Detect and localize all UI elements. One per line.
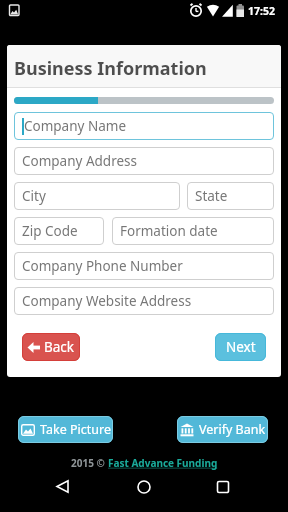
button[interactable]: Back bbox=[22, 333, 80, 361]
staticText: Company Address bbox=[22, 152, 138, 170]
button[interactable]: State bbox=[187, 182, 274, 210]
staticText: Company Website Address bbox=[22, 292, 192, 310]
button[interactable] bbox=[210, 474, 236, 500]
staticText: Verify Bank bbox=[199, 421, 266, 438]
button[interactable]: Zip Code bbox=[14, 217, 104, 245]
button[interactable]: Company Website Address bbox=[14, 287, 274, 315]
staticText: Company Phone Number bbox=[22, 257, 183, 275]
staticText: Next bbox=[226, 338, 256, 356]
button[interactable]: Company Phone Number bbox=[14, 252, 274, 280]
button[interactable]: Next bbox=[215, 333, 266, 361]
staticText: Company Name bbox=[24, 117, 127, 135]
button[interactable]: Company Address bbox=[14, 147, 274, 175]
button[interactable]: Company Name bbox=[14, 112, 274, 140]
staticText: City bbox=[22, 187, 46, 205]
button[interactable]: Take Picture bbox=[18, 416, 113, 443]
button[interactable]: Verify Bank bbox=[177, 416, 268, 443]
staticText: 2015 © bbox=[71, 456, 108, 470]
staticText: Formation date bbox=[120, 222, 218, 240]
button[interactable] bbox=[50, 474, 76, 500]
staticText: Zip Code bbox=[22, 222, 78, 240]
button[interactable]: City bbox=[14, 182, 180, 210]
staticText: State bbox=[195, 187, 228, 205]
button[interactable]: Fast Advance Funding bbox=[108, 456, 218, 470]
staticText: Back bbox=[44, 338, 75, 356]
staticText: Business Information bbox=[14, 56, 207, 81]
staticText: Take Picture bbox=[40, 421, 111, 438]
staticText: 17:52 bbox=[248, 4, 275, 18]
button[interactable] bbox=[131, 474, 157, 500]
button[interactable]: Formation date bbox=[112, 217, 274, 245]
